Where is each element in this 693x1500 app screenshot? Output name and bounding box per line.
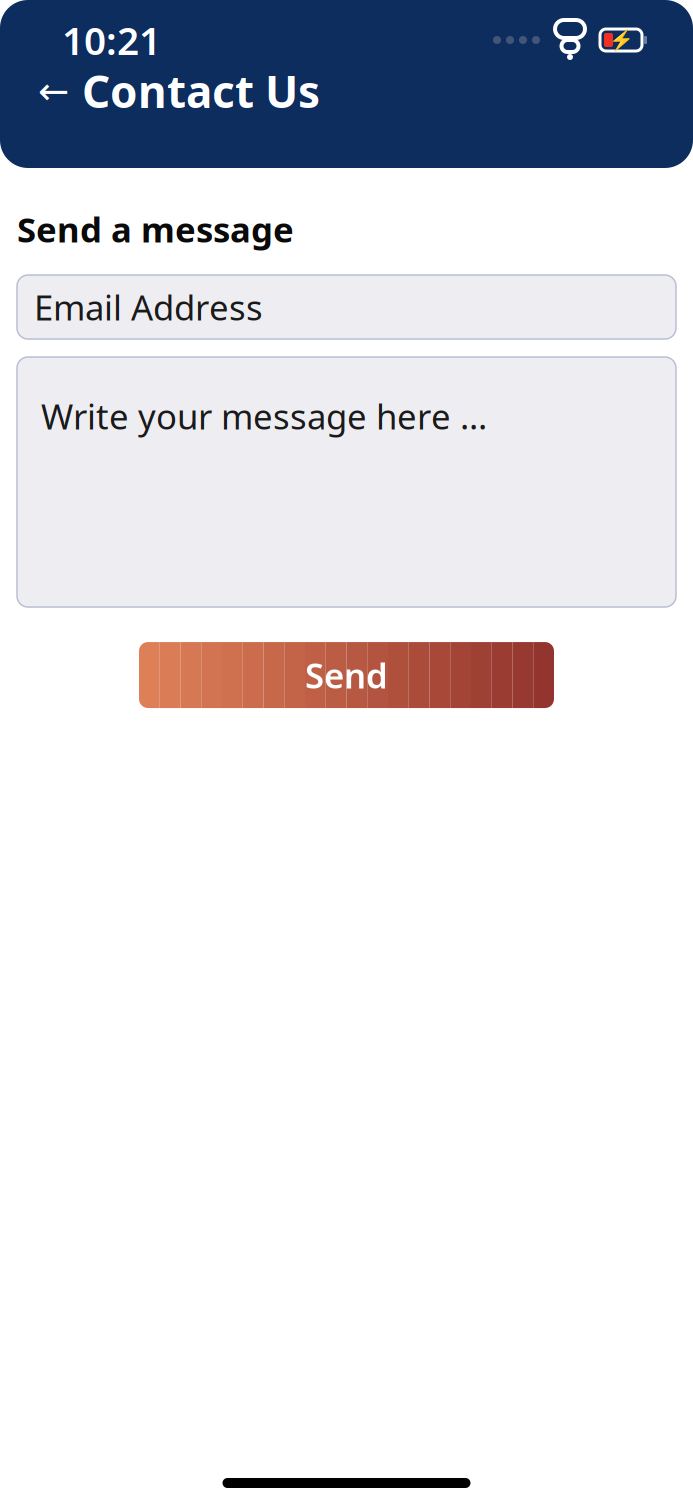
- button[interactable]: ←: [0, 56, 338, 126]
- button[interactable]: Write your message here ...: [17, 357, 676, 607]
- staticText: 10:21: [62, 14, 161, 66]
- button[interactable]: Send: [139, 642, 554, 708]
- staticText: Send a message: [17, 206, 294, 252]
- staticText: ⚡: [608, 29, 633, 51]
- staticText: Send: [305, 652, 388, 698]
- staticText: Write your message here ...: [41, 393, 487, 439]
- staticText: Contact Us: [82, 62, 320, 120]
- staticText: ←: [38, 70, 69, 112]
- staticText: Email Address: [34, 284, 263, 330]
- button[interactable]: Email Address: [17, 275, 676, 339]
